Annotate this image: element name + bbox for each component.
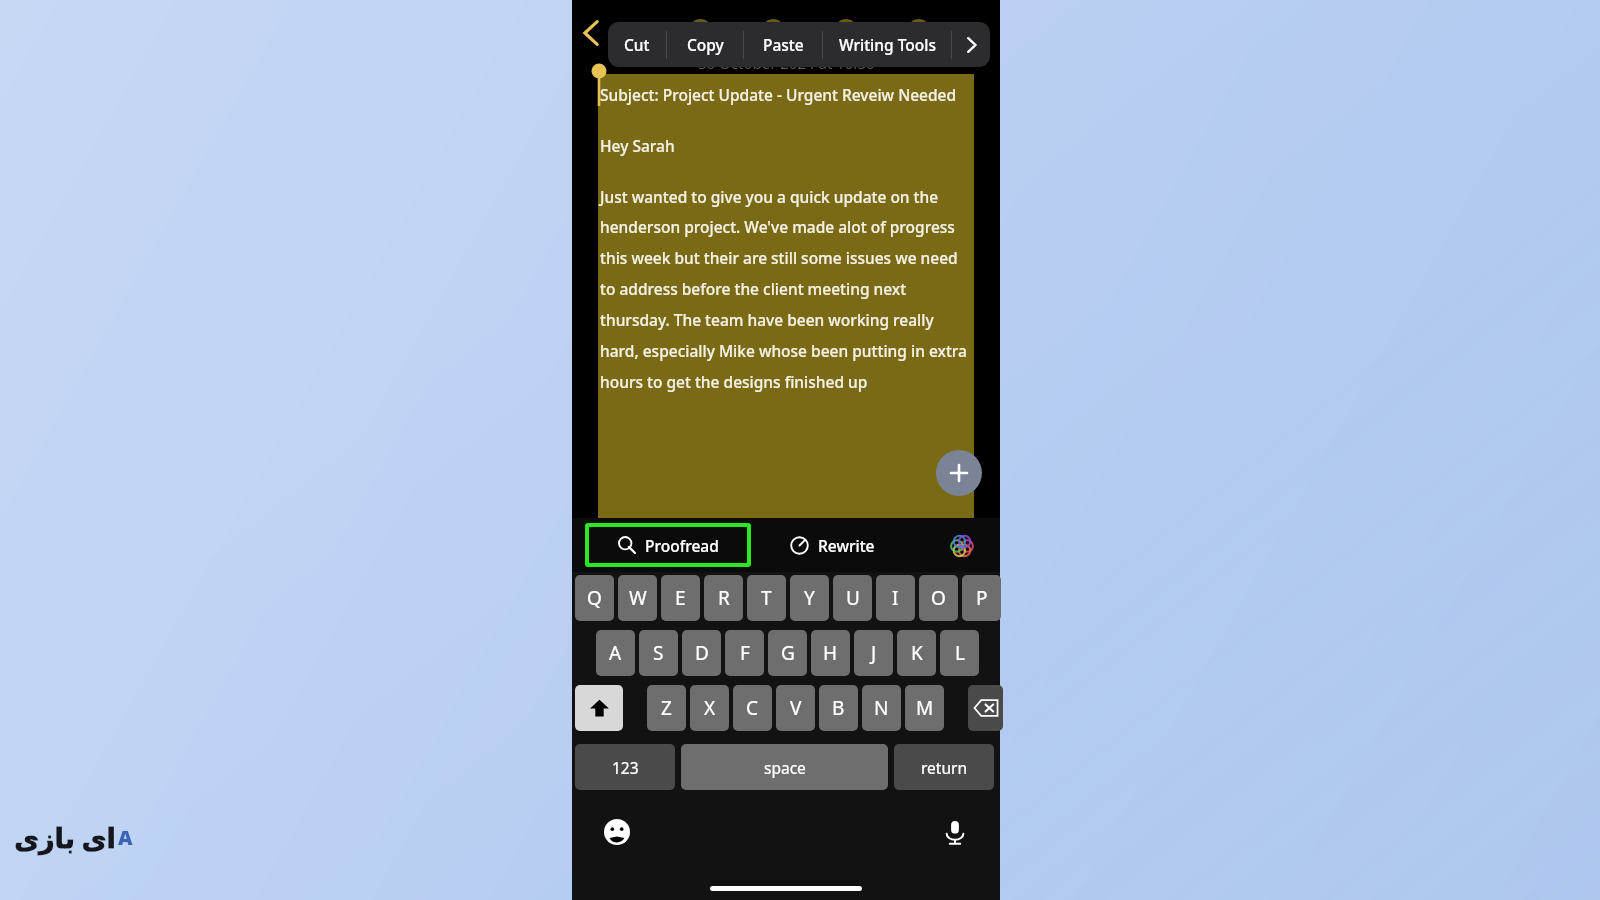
button[interactable]: Copy (667, 22, 743, 67)
button[interactable]: Paste (744, 22, 822, 67)
staticText: L (955, 640, 965, 666)
staticText: Hey Sarah (600, 135, 675, 156)
staticText: I (892, 585, 899, 611)
button[interactable]: space (681, 744, 888, 790)
staticText: T (761, 585, 772, 611)
button[interactable]: I (876, 575, 915, 621)
button[interactable]: C (733, 685, 772, 731)
staticText: 30 October 2024 at 10:30 (698, 53, 875, 73)
button[interactable]: Apple Intelligence (947, 531, 977, 561)
button[interactable]: H (811, 630, 850, 676)
staticText: Writing Tools (839, 34, 936, 55)
button[interactable]: Writing Tools (823, 22, 951, 67)
staticText: Subject: Project Update - Urgent Reveiw … (600, 84, 957, 105)
button[interactable]: P (962, 575, 1001, 621)
button[interactable]: G (768, 630, 807, 676)
button[interactable]: Y (790, 575, 829, 621)
button[interactable]: O (919, 575, 958, 621)
staticText: R (718, 585, 730, 611)
button[interactable]: M (905, 685, 944, 731)
button[interactable]: B (819, 685, 858, 731)
button[interactable]: Q (575, 575, 614, 621)
staticText: W (629, 585, 647, 611)
staticText: B (832, 695, 845, 721)
staticText: G (781, 640, 795, 666)
staticText: Y (804, 585, 815, 611)
button[interactable]: L (940, 630, 979, 676)
staticText: A (609, 640, 622, 666)
staticText: V (790, 695, 802, 721)
staticText: return (921, 757, 967, 778)
staticText: 123 (612, 757, 639, 778)
staticText: Rewrite (818, 535, 875, 556)
staticText: C (746, 695, 759, 721)
button[interactable]: U (833, 575, 872, 621)
staticText: ای بازی (14, 819, 116, 856)
button[interactable]: A (596, 630, 635, 676)
staticText: S (653, 640, 664, 666)
button[interactable]: Cut (608, 22, 666, 67)
button[interactable]: Backspace (968, 685, 1003, 731)
staticText: Z (661, 695, 672, 721)
staticText: U (846, 585, 860, 611)
staticText: X (704, 695, 716, 721)
staticText: M (916, 695, 934, 721)
button[interactable]: Back (580, 18, 602, 48)
button[interactable]: N (862, 685, 901, 731)
staticText: Q (587, 585, 602, 611)
button[interactable]: Add attachment (936, 450, 982, 496)
staticText: Copy (687, 34, 724, 55)
button[interactable]: return (894, 744, 994, 790)
button[interactable]: S (639, 630, 678, 676)
button[interactable]: Proofread (585, 523, 751, 567)
staticText: H (823, 640, 838, 666)
button[interactable]: More (952, 22, 990, 67)
staticText: Cut (624, 34, 650, 55)
staticText: D (695, 640, 709, 666)
staticText: Just wanted to give you a quick update o… (600, 186, 972, 392)
button[interactable]: F (725, 630, 764, 676)
button[interactable]: K (897, 630, 936, 676)
button[interactable]: Z (647, 685, 686, 731)
staticText: E (675, 585, 686, 611)
staticText: K (911, 640, 923, 666)
button[interactable]: X (690, 685, 729, 731)
button[interactable]: J (854, 630, 893, 676)
button[interactable]: W (618, 575, 657, 621)
button[interactable]: Dictate (940, 817, 970, 847)
button[interactable]: E (661, 575, 700, 621)
button[interactable]: V (776, 685, 815, 731)
button[interactable]: D (682, 630, 721, 676)
button[interactable]: R (704, 575, 743, 621)
staticText: space (764, 757, 806, 778)
staticText: Proofread (645, 535, 719, 556)
staticText: A (118, 824, 133, 851)
button[interactable]: Rewrite (790, 523, 930, 567)
button[interactable]: T (747, 575, 786, 621)
button[interactable]: Shift (575, 685, 623, 731)
staticText: N (874, 695, 889, 721)
button[interactable]: 123 (575, 744, 675, 790)
staticText: Paste (763, 34, 804, 55)
button[interactable]: Emoji (602, 817, 632, 847)
staticText: F (740, 640, 750, 666)
staticText: J (871, 640, 877, 666)
staticText: O (931, 585, 946, 611)
staticText: P (976, 585, 988, 611)
